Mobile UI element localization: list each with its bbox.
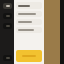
button[interactable]: Search	[3, 23, 12, 29]
button[interactable]: Settings	[3, 55, 12, 61]
button[interactable]	[16, 11, 42, 17]
button[interactable]: Highlighted action	[16, 50, 42, 62]
button[interactable]	[16, 27, 42, 33]
button[interactable]: Home	[3, 3, 12, 9]
button[interactable]	[16, 2, 42, 9]
button[interactable]: Library	[3, 13, 12, 19]
button[interactable]	[16, 19, 42, 25]
